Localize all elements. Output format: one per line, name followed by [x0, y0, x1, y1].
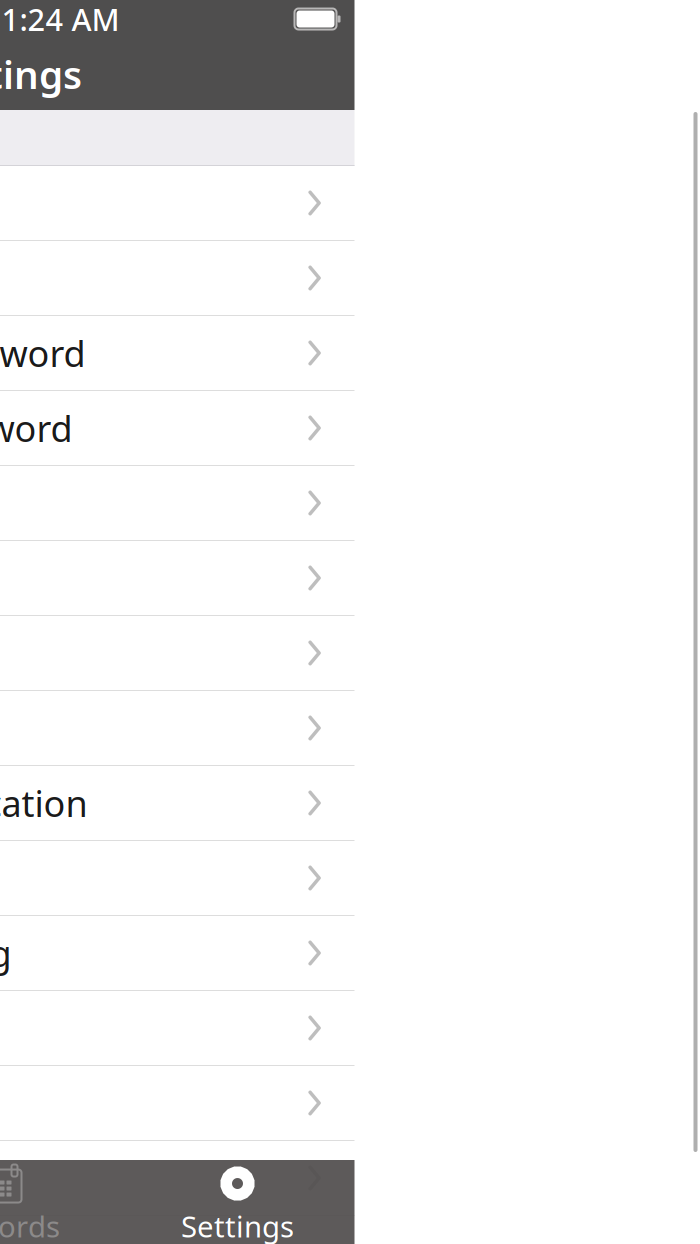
staticText: Records	[0, 1206, 60, 1244]
button[interactable]: Motion and Notification	[0, 766, 354, 841]
button[interactable]: Day/Time	[0, 991, 354, 1066]
button[interactable]: About	[0, 166, 354, 241]
button[interactable]: Device admin password	[0, 316, 354, 391]
button[interactable]: Network	[0, 466, 354, 541]
button[interactable]: Others	[0, 1141, 354, 1216]
staticText: 11:24 AM	[0, 0, 119, 39]
button[interactable]: Records	[0, 1160, 121, 1244]
button[interactable]: Nickname	[0, 241, 354, 316]
button[interactable]: SD card	[0, 616, 354, 691]
button[interactable]: System settings	[0, 1066, 354, 1141]
staticText: Settings	[0, 48, 82, 100]
staticText: Device guest password	[0, 404, 72, 452]
button[interactable]: Device guest password	[0, 391, 354, 466]
staticText: Settings	[181, 1206, 294, 1244]
staticText: Device admin password	[0, 329, 85, 377]
staticText: Schedule recording	[0, 929, 11, 977]
button[interactable]: Schedule recording	[0, 916, 354, 991]
button[interactable]: Storage Device	[0, 691, 354, 766]
button[interactable]: Settings	[121, 1160, 354, 1244]
button[interactable]: OSD	[0, 541, 354, 616]
staticText: Motion and Notification	[0, 779, 87, 827]
button[interactable]: Schedule alerting	[0, 841, 354, 916]
